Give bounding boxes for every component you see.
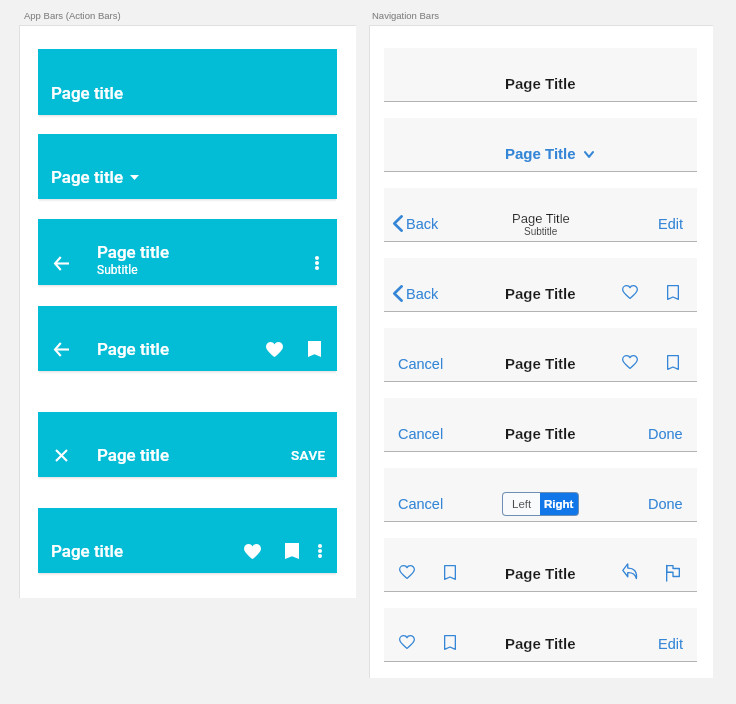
staticText: Edit — [658, 636, 683, 652]
button[interactable]: Close — [47, 441, 75, 469]
button[interactable]: Bookmark — [278, 537, 306, 565]
button[interactable]: Done — [642, 420, 689, 448]
button[interactable] — [384, 468, 697, 522]
staticText: Done — [648, 496, 683, 512]
button[interactable]: Navigate up — [38, 306, 337, 371]
button[interactable]: Cancel — [392, 350, 450, 378]
button[interactable]: Flag — [660, 561, 686, 587]
staticText: Left — [512, 498, 532, 511]
button[interactable] — [384, 258, 697, 312]
button[interactable]: Edit — [652, 630, 689, 658]
staticText: Done — [648, 426, 683, 442]
staticText: Page title — [51, 83, 123, 103]
button[interactable] — [384, 48, 697, 102]
staticText: SAVE — [291, 447, 326, 463]
staticText: Page title — [97, 339, 169, 359]
button[interactable]: Favorite — [260, 335, 288, 363]
button[interactable]: Navigate up — [38, 219, 337, 285]
button[interactable]: Page title — [38, 508, 337, 573]
button[interactable]: More options — [303, 249, 331, 277]
button[interactable]: Back — [389, 211, 443, 236]
button[interactable]: Navigate up — [47, 249, 75, 277]
button[interactable]: Bookmark — [660, 281, 686, 307]
button[interactable]: Edit — [652, 210, 689, 238]
button[interactable]: Favorite — [394, 631, 420, 657]
button[interactable] — [384, 538, 697, 592]
staticText: Page Title — [505, 425, 576, 442]
button[interactable]: Open menu — [127, 170, 141, 184]
button[interactable]: Favorite — [617, 281, 643, 307]
button[interactable]: Close — [38, 412, 337, 477]
staticText: Cancel — [398, 356, 444, 372]
button[interactable]: Page title — [38, 134, 337, 199]
button[interactable]: Navigate up — [47, 335, 75, 363]
staticText: Cancel — [398, 496, 444, 512]
button[interactable] — [384, 608, 697, 662]
button[interactable]: Cancel — [392, 420, 450, 448]
staticText: Subtitle — [524, 226, 558, 237]
staticText: App Bars (Action Bars) — [24, 10, 121, 21]
staticText: Cancel — [398, 426, 444, 442]
staticText: Page title — [51, 541, 123, 561]
button[interactable]: Favorite — [617, 351, 643, 377]
staticText: Page Title — [505, 75, 576, 92]
button[interactable] — [384, 188, 697, 242]
button[interactable]: Favorite — [394, 561, 420, 587]
button[interactable]: Bookmark — [300, 335, 328, 363]
staticText: Right — [544, 498, 574, 511]
button[interactable]: Done — [642, 490, 689, 518]
button[interactable]: Left — [503, 493, 540, 515]
button[interactable]: Page title — [38, 49, 337, 115]
button[interactable]: More options — [306, 537, 334, 565]
button[interactable]: Open menu — [580, 145, 598, 163]
button[interactable] — [384, 328, 697, 382]
button[interactable]: SAVE — [279, 441, 338, 469]
staticText: Page Title — [505, 565, 576, 582]
staticText: Page Title — [505, 145, 576, 162]
button[interactable]: Bookmark — [660, 351, 686, 377]
button[interactable]: Right — [540, 493, 578, 515]
staticText: Page Title — [512, 211, 570, 226]
button[interactable]: Favorite — [238, 537, 266, 565]
staticText: Navigation Bars — [372, 10, 440, 21]
button[interactable]: Page Title — [501, 141, 580, 166]
staticText: Back — [406, 216, 439, 232]
staticText: Page Title — [505, 635, 576, 652]
button[interactable] — [384, 118, 697, 172]
staticText: Page title — [97, 242, 169, 262]
staticText: Page title — [51, 167, 123, 187]
button[interactable] — [384, 398, 697, 452]
staticText: Edit — [658, 216, 683, 232]
button[interactable]: Reply — [617, 561, 643, 587]
staticText: Back — [406, 286, 439, 302]
button[interactable]: Bookmark — [437, 561, 463, 587]
button[interactable]: Back — [389, 281, 443, 306]
staticText: Page Title — [505, 285, 576, 302]
button[interactable]: Bookmark — [437, 631, 463, 657]
staticText: Page Title — [505, 355, 576, 372]
staticText: Page title — [97, 445, 169, 465]
button[interactable]: Cancel — [392, 490, 450, 518]
staticText: Subtitle — [97, 263, 138, 277]
